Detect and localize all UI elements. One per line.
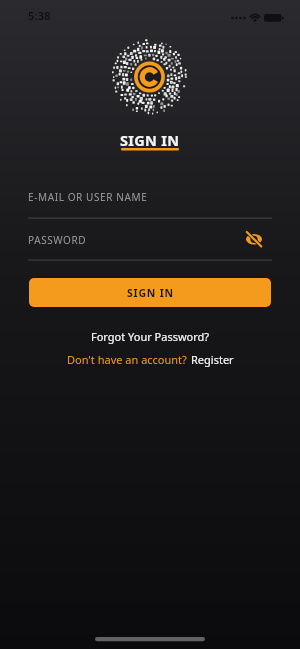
button[interactable]: E-MAIL OR USER NAME bbox=[28, 180, 272, 213]
staticText: SIGN IN bbox=[120, 130, 180, 148]
staticText: Register bbox=[191, 352, 234, 367]
button[interactable]: Don't have an account? bbox=[67, 352, 234, 367]
staticText: 5:38 bbox=[28, 8, 51, 23]
staticText: PASSWORD bbox=[28, 233, 87, 247]
button[interactable] bbox=[242, 228, 268, 252]
button[interactable]: PASSWORD bbox=[28, 224, 272, 256]
staticText: SIGN IN bbox=[127, 286, 174, 300]
button[interactable]: Forgot Your Password? bbox=[91, 329, 210, 344]
button[interactable]: SIGN IN bbox=[29, 278, 271, 307]
staticText: E-MAIL OR USER NAME bbox=[28, 190, 148, 204]
staticText: Don't have an account? bbox=[67, 352, 187, 367]
staticText: Forgot Your Password? bbox=[91, 329, 210, 344]
